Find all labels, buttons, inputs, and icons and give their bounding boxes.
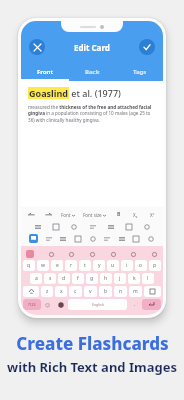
- button[interactable]: q: [23, 260, 35, 271]
- button[interactable]: Back: [69, 68, 116, 81]
- button[interactable]: w: [37, 260, 49, 271]
- button[interactable]: Key action 2: [88, 250, 96, 258]
- button[interactable]: l: [142, 273, 154, 284]
- button[interactable]: Align 2: [73, 234, 82, 243]
- staticText: u: [111, 262, 115, 269]
- button[interactable]: Format 2: [69, 222, 78, 231]
- staticText: b: [104, 288, 108, 295]
- button[interactable]: English: [68, 299, 127, 310]
- staticText: X₂: [133, 212, 138, 218]
- staticText: r: [70, 262, 73, 269]
- button[interactable]: s: [44, 273, 56, 284]
- button[interactable]: Align 1: [58, 234, 67, 243]
- button[interactable]: Keyboard theme: [26, 250, 34, 258]
- button[interactable]: Format 0: [33, 222, 42, 231]
- button[interactable]: Close: [29, 39, 45, 55]
- button[interactable]: x: [55, 286, 67, 297]
- button[interactable]: Align 6: [131, 234, 140, 243]
- button[interactable]: Format 1: [51, 222, 60, 231]
- staticText: j: [119, 275, 121, 282]
- staticText: d: [62, 275, 66, 282]
- button[interactable]: Language: [55, 299, 66, 310]
- button[interactable]: v: [84, 286, 97, 297]
- staticText: e: [56, 262, 59, 269]
- button[interactable]: Align 0: [44, 234, 53, 243]
- button[interactable]: Subscript: [131, 210, 140, 219]
- button[interactable]: Format 3: [88, 222, 97, 231]
- button[interactable]: i: [121, 260, 133, 271]
- staticText: ?123: [28, 302, 36, 307]
- staticText: i: [126, 262, 128, 269]
- button[interactable]: Key action 3: [109, 250, 117, 258]
- button[interactable]: Key action 1: [67, 250, 75, 258]
- staticText: c: [74, 288, 77, 295]
- button[interactable]: Align 4: [102, 234, 111, 243]
- button[interactable]: Shift: [23, 286, 39, 297]
- staticText: Edit Card: [74, 42, 110, 53]
- button[interactable]: Format 6: [142, 222, 151, 231]
- staticText: Create Flashcards: [16, 332, 169, 355]
- staticText: q: [27, 262, 31, 269]
- staticText: B: [117, 211, 121, 218]
- button[interactable]: a: [30, 273, 42, 284]
- button[interactable]: Format 5: [124, 222, 133, 231]
- staticText: h: [104, 275, 108, 282]
- button[interactable]: f: [72, 273, 84, 284]
- button[interactable]: h: [100, 273, 112, 284]
- button[interactable]: j: [114, 273, 126, 284]
- staticText: with Rich Text and Images: [7, 358, 177, 376]
- staticText: Goaslind: [29, 87, 68, 99]
- button[interactable]: Align 3: [88, 234, 97, 243]
- button[interactable]: Bold: [114, 210, 123, 219]
- button[interactable]: o: [135, 260, 147, 271]
- staticText: X²: [150, 212, 155, 218]
- staticText: l: [147, 275, 149, 282]
- button[interactable]: z: [41, 286, 53, 297]
- staticText: Tags: [133, 68, 147, 76]
- button[interactable]: k: [128, 273, 140, 284]
- button[interactable]: ?123: [23, 299, 41, 310]
- button[interactable]: Backspace: [144, 286, 161, 297]
- button[interactable]: Font size: [83, 212, 106, 218]
- button[interactable]: Save: [139, 39, 155, 55]
- button[interactable]: y: [93, 260, 105, 271]
- button[interactable]: d: [58, 273, 70, 284]
- button[interactable]: c: [69, 286, 82, 297]
- button[interactable]: Format 4: [106, 222, 115, 231]
- staticText: y: [98, 262, 101, 269]
- button[interactable]: Key action 5: [150, 250, 158, 258]
- button[interactable]: Superscript: [148, 210, 157, 219]
- staticText: et al. (1977): [69, 87, 121, 99]
- button[interactable]: .: [129, 299, 140, 310]
- staticText: w: [41, 262, 45, 269]
- staticText: ☺: [45, 302, 51, 308]
- staticText: s: [49, 275, 52, 282]
- button[interactable]: Undo: [27, 210, 36, 219]
- button[interactable]: Redo: [44, 210, 53, 219]
- button[interactable]: g: [86, 273, 98, 284]
- button[interactable]: m: [129, 286, 142, 297]
- button[interactable]: Highlight: [29, 234, 38, 243]
- button[interactable]: Key action 4: [129, 250, 137, 258]
- button[interactable]: Align 5: [117, 234, 126, 243]
- button[interactable]: e: [51, 260, 63, 271]
- staticText: m: [133, 288, 138, 295]
- staticText: z: [46, 288, 49, 295]
- button[interactable]: Enter: [142, 299, 161, 310]
- button[interactable]: u: [107, 260, 119, 271]
- button[interactable]: n: [114, 286, 127, 297]
- button[interactable]: Front: [21, 68, 69, 81]
- staticText: Back: [85, 68, 100, 76]
- button[interactable]: Tags: [116, 68, 163, 81]
- button[interactable]: Font: [61, 212, 75, 218]
- button[interactable]: t: [79, 260, 91, 271]
- button[interactable]: p: [149, 260, 161, 271]
- staticText: k: [133, 275, 136, 282]
- button[interactable]: Align 7: [146, 234, 155, 243]
- button[interactable]: Key action 0: [47, 250, 55, 258]
- button[interactable]: b: [99, 286, 112, 297]
- staticText: .: [134, 301, 136, 308]
- button[interactable]: r: [65, 260, 77, 271]
- staticText: o: [139, 262, 143, 269]
- button[interactable]: Emoji: [43, 299, 53, 310]
